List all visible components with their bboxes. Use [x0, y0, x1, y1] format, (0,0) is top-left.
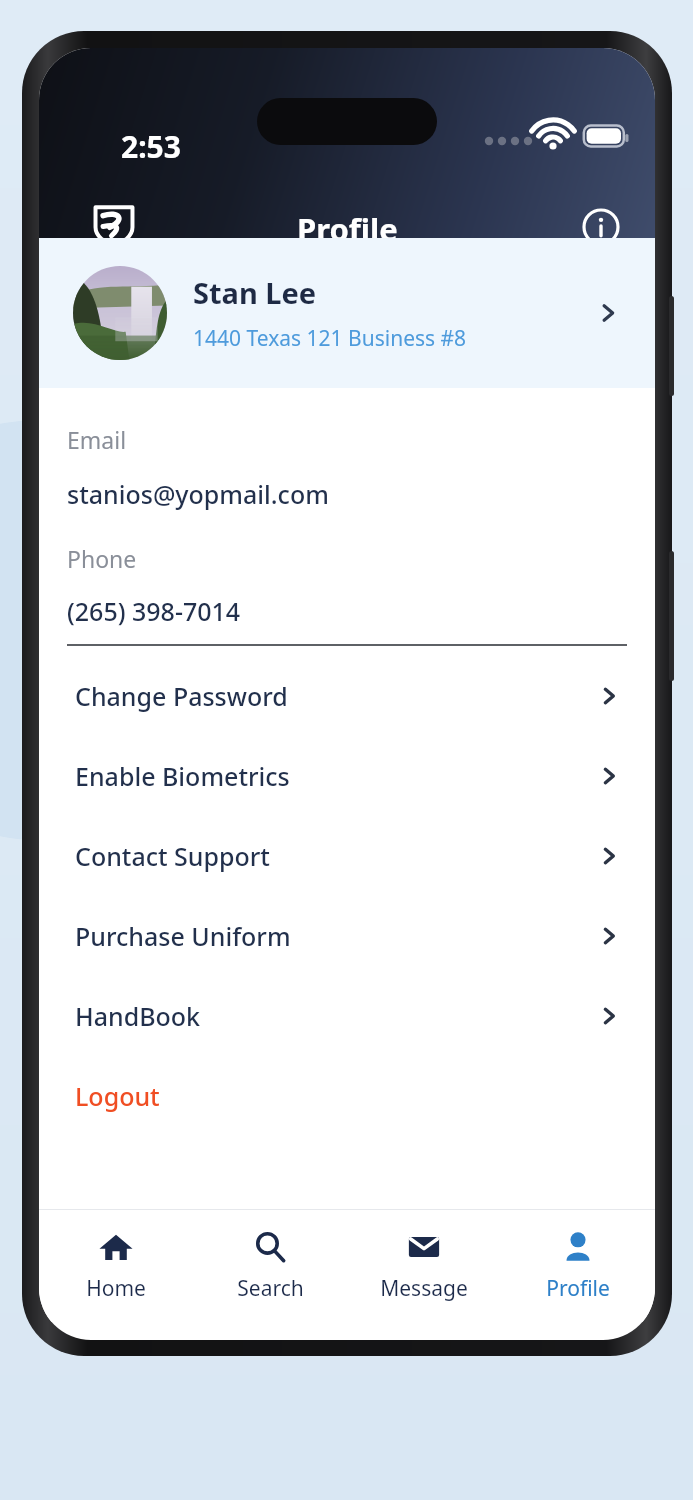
staticText: Message	[380, 1274, 468, 1303]
button[interactable]: Stan Lee	[39, 238, 655, 388]
staticText: stanios@yopmail.com	[67, 477, 329, 511]
button[interactable]: Enable Biometrics	[39, 736, 655, 816]
staticText: HandBook	[75, 999, 597, 1033]
button[interactable]: Change Password	[39, 656, 655, 736]
staticText: 1440 Texas 121 Business #8	[193, 324, 467, 353]
button[interactable]: Message	[347, 1210, 501, 1322]
button[interactable]: Search	[193, 1210, 347, 1322]
button[interactable]: Contact Support	[39, 816, 655, 896]
staticText: Profile	[297, 208, 398, 250]
button[interactable]: Purchase Uniform	[39, 896, 655, 976]
staticText: Contact Support	[75, 839, 597, 873]
button[interactable]: App logo	[93, 203, 135, 245]
staticText: Logout	[75, 1079, 160, 1113]
staticText: Purchase Uniform	[75, 919, 597, 953]
button[interactable]: HandBook	[39, 976, 655, 1056]
button[interactable]: Home	[39, 1210, 193, 1322]
staticText: 2:53	[121, 126, 181, 167]
staticText: Enable Biometrics	[75, 759, 597, 793]
staticText: Phone	[67, 543, 137, 574]
staticText: Change Password	[75, 679, 597, 713]
button[interactable]: Logout	[39, 1056, 655, 1136]
staticText: (265) 398-7014	[67, 594, 241, 628]
staticText: Profile	[546, 1274, 610, 1303]
staticText: Home	[86, 1274, 146, 1303]
button[interactable]: Information	[582, 208, 620, 246]
staticText: Search	[237, 1274, 304, 1303]
staticText: Stan Lee	[193, 273, 317, 312]
button[interactable]: Profile	[501, 1210, 655, 1322]
staticText: Email	[67, 424, 127, 455]
